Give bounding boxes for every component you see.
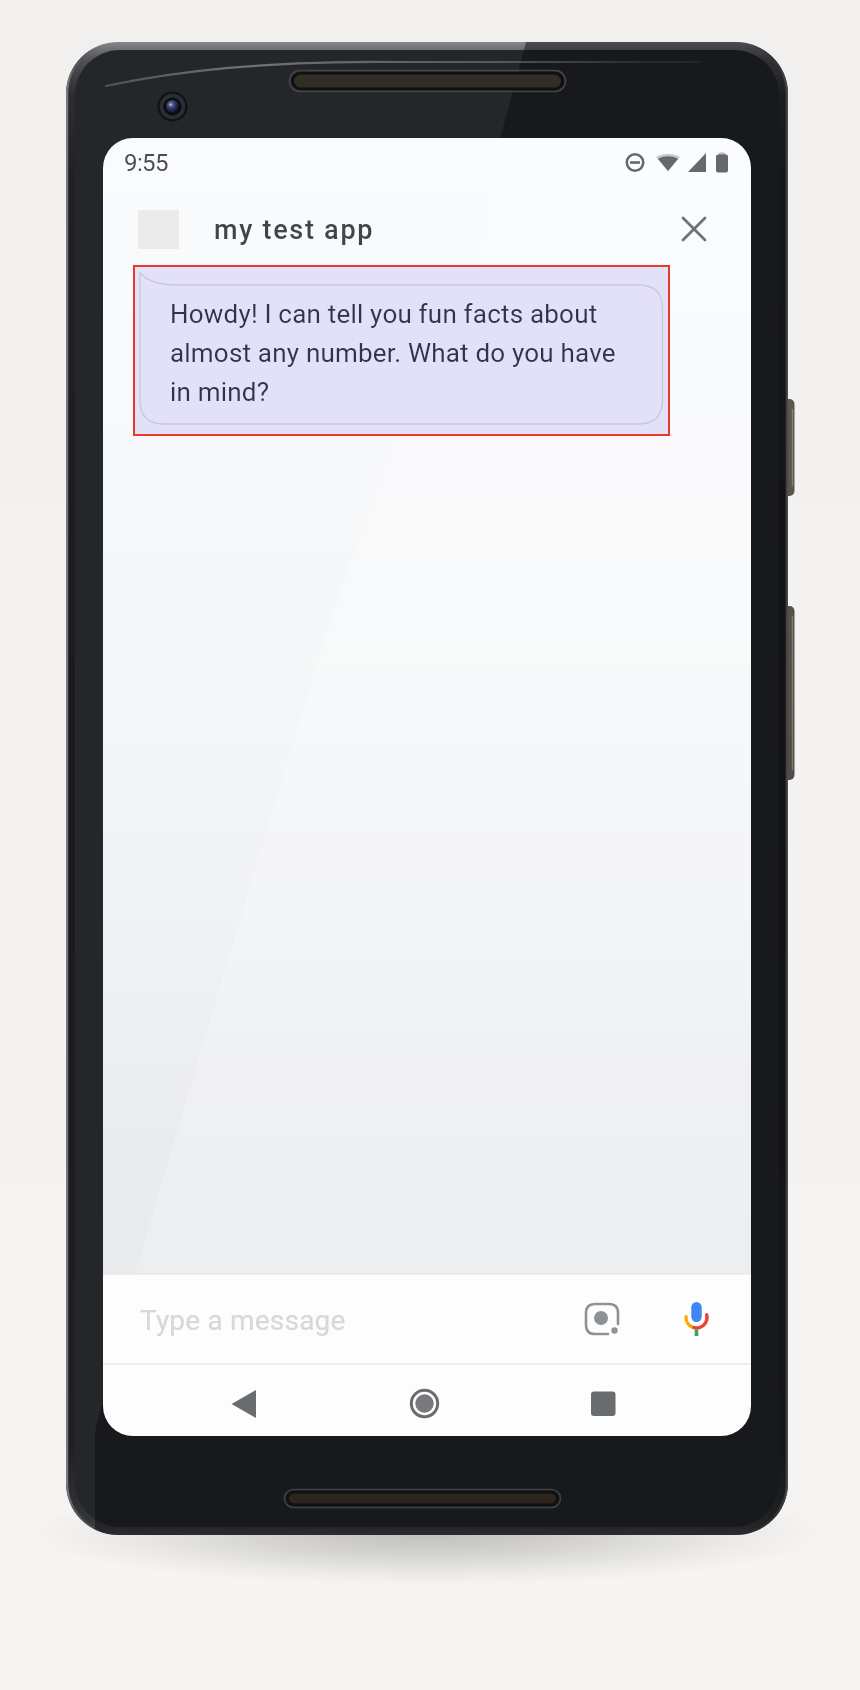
button[interactable]	[402, 1382, 448, 1426]
button[interactable]	[677, 212, 711, 246]
button[interactable]	[673, 1296, 721, 1346]
staticText: Type a message	[140, 1304, 346, 1337]
button[interactable]: Howdy! I can tell you fun facts about al…	[133, 265, 670, 436]
staticText: Howdy! I can tell you fun facts about al…	[170, 299, 616, 407]
staticText: 9:55	[124, 149, 168, 177]
button[interactable]	[103, 1275, 563, 1363]
staticText: my test app	[214, 214, 375, 246]
button[interactable]	[581, 1299, 623, 1339]
button[interactable]	[221, 1382, 269, 1426]
button[interactable]	[581, 1382, 627, 1426]
